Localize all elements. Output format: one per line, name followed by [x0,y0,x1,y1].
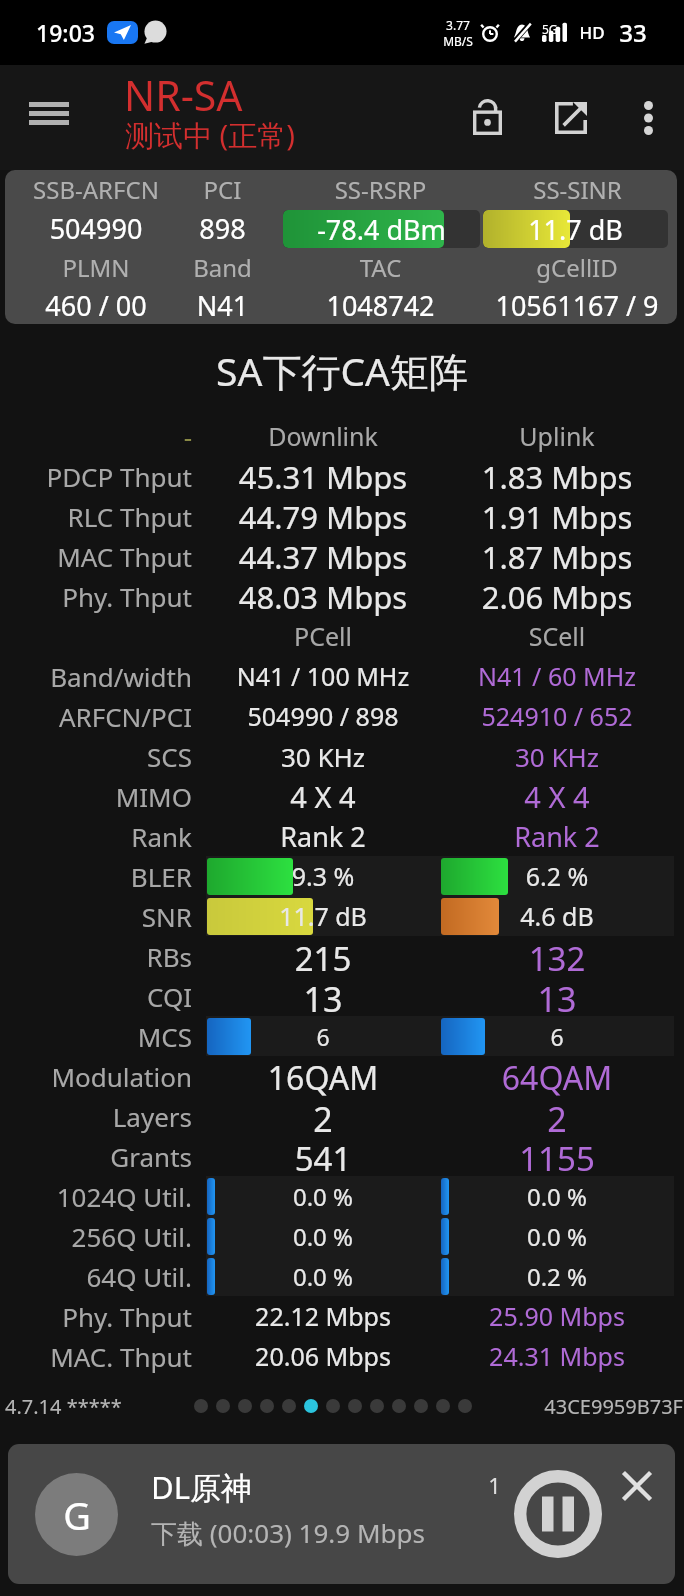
staticText: 30 KHz [206,739,440,774]
staticText: 0.0 % [440,1220,674,1253]
staticText: 9.3 % [206,859,440,893]
staticText: 6.2 % [440,859,674,893]
button[interactable]: Pause [514,1470,602,1558]
staticText: 215 [206,936,440,976]
staticText: 3.77 [446,17,470,33]
staticText: gCellID [536,251,618,284]
staticText: CQI [0,979,192,1014]
staticText: Band [187,251,258,284]
staticText: 11.7 dB [483,211,668,248]
staticText: BLER [0,859,192,894]
staticText: 504990 [5,210,187,247]
staticText: 0.2 % [440,1260,674,1293]
staticText: Rank 2 [440,818,674,855]
staticText: 460 / 00 [5,287,187,324]
staticText: 测试中 (正常) [125,115,295,155]
staticText: 4 X 4 [206,777,440,816]
staticText: Downlink [206,419,440,453]
staticText: SS-SINR [533,173,622,206]
staticText: MIMO [0,779,192,814]
staticText: 0.0 % [206,1180,440,1213]
staticText: Band/width [0,659,192,694]
staticText: 25.90 Mbps [440,1299,674,1333]
staticText: 0.0 % [206,1220,440,1253]
staticText: - [0,419,192,454]
staticText: NR-SA [124,67,243,123]
staticText: ARFCN/PCI [0,699,192,734]
staticText: 24.31 Mbps [440,1339,674,1373]
staticText: MAC. Thput [0,1339,192,1374]
staticText: Modulation [0,1059,192,1094]
button[interactable]: G [8,1444,675,1584]
staticText: 22.12 Mbps [206,1299,440,1333]
staticText: 20.06 Mbps [206,1339,440,1373]
staticText: Rank [0,819,192,854]
staticText: N41 [187,287,258,324]
staticText: 13 [440,976,674,1016]
staticText: PCI [187,173,258,206]
staticText: 64Q Util. [0,1259,192,1294]
staticText: 下载 (00:03) 19.9 Mbps [151,1515,425,1551]
staticText: RLC Thput [0,499,192,534]
staticText: 44.79 Mbps [206,496,440,536]
staticText: 1155 [440,1136,674,1176]
staticText: 4.6 dB [440,899,674,933]
staticText: SS-RSRP [258,173,503,206]
staticText: Grants [0,1139,192,1174]
staticText: 1024Q Util. [0,1179,192,1214]
staticText: SA下行CA矩阵 [0,344,684,397]
staticText: 1 [488,1470,501,1500]
staticText: 132 [440,936,674,976]
staticText: 19:03 [36,17,95,48]
staticText: 44.37 Mbps [206,536,440,576]
staticText: 2 [440,1096,674,1136]
staticText: 504990 / 898 [206,699,440,733]
button[interactable]: More options [612,65,684,170]
staticText: MAC Thput [0,539,192,574]
staticText: 4 X 4 [440,777,674,816]
staticText: Uplink [440,419,674,453]
staticText: 5G [542,21,558,37]
staticText: 2.06 Mbps [440,576,674,616]
staticText: N41 / 60 MHz [440,659,674,693]
staticText: 1.83 Mbps [440,456,674,496]
staticText: Phy. Thput [0,579,192,614]
staticText: 1.87 Mbps [440,536,674,576]
staticText: MB/S [443,33,473,49]
staticText: PLMN [5,251,187,284]
staticText: Rank 2 [206,818,440,855]
staticText: 48.03 Mbps [206,576,440,616]
button[interactable]: Menu [0,65,98,170]
staticText: SSB-ARFCN [5,173,187,206]
staticText: DL原神 [151,1466,252,1508]
staticText: G [63,1489,91,1541]
staticText: MCS [0,1019,192,1054]
staticText: SNR [0,899,192,934]
button[interactable]: Close [609,1458,665,1514]
staticText: PCell [206,619,440,653]
staticText: 11.7 dB [206,899,440,933]
staticText: 10561167 / 9 [495,287,659,324]
staticText: 4.7.14 ***** [5,1393,122,1420]
staticText: 30 KHz [440,739,674,774]
staticText: SCS [0,739,192,774]
staticText: Phy. Thput [0,1299,192,1334]
staticText: 64QAM [440,1056,674,1096]
staticText: 0.0 % [206,1260,440,1293]
staticText: 33 [619,16,647,49]
staticText: 1.91 Mbps [440,496,674,536]
staticText: 524910 / 652 [440,699,674,733]
staticText: 0.0 % [440,1180,674,1213]
button[interactable]: Lock [471,65,530,170]
staticText: 898 [187,210,258,247]
staticText: 541 [206,1136,440,1176]
staticText: 6 [440,1021,674,1052]
staticText: 13 [206,976,440,1016]
staticText: TAC [258,251,503,284]
staticText: 16QAM [206,1056,440,1096]
staticText: PDCP Thput [0,459,192,494]
button[interactable]: Share [530,65,612,170]
staticText: 6 [206,1021,440,1052]
staticText: 45.31 Mbps [206,456,440,496]
staticText: 1048742 [258,287,503,324]
